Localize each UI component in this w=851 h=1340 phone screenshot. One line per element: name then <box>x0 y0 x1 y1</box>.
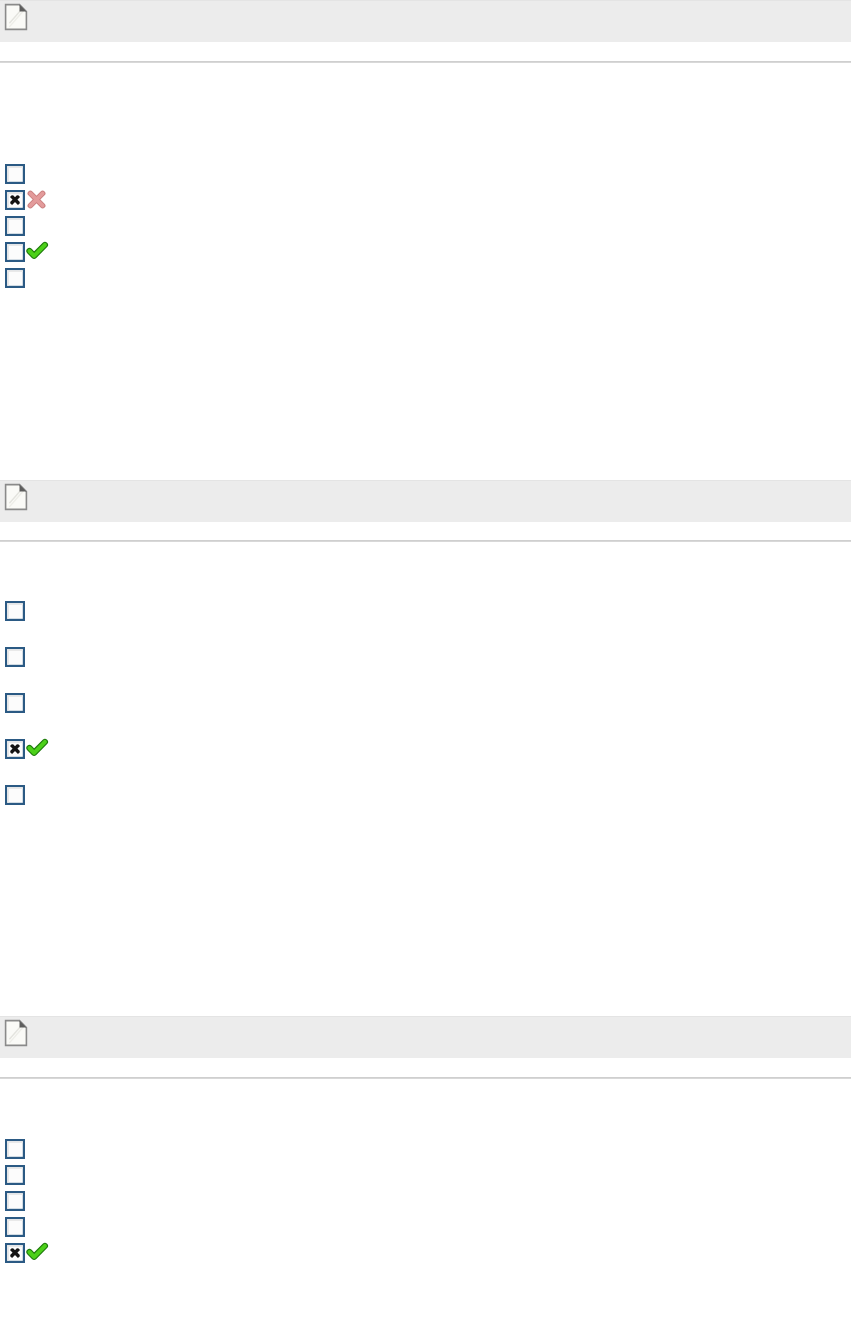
button[interactable]: Answer option <box>0 692 851 738</box>
button[interactable]: Answer option <box>0 1190 851 1216</box>
button[interactable]: Document section <box>0 0 851 42</box>
button[interactable]: Answer option <box>0 1164 851 1190</box>
button[interactable]: Answer option <box>0 646 851 692</box>
button[interactable]: Answer option <box>0 600 851 646</box>
button[interactable]: Answer option <box>0 215 851 241</box>
button[interactable]: Answer option <box>0 163 851 189</box>
button[interactable]: Selected answer, correct <box>0 1242 851 1268</box>
button[interactable]: Answer option <box>0 1138 851 1164</box>
button[interactable]: Selected answer, correct <box>0 738 851 784</box>
button[interactable]: Answer option <box>0 1216 851 1242</box>
button[interactable]: Document section <box>0 1016 851 1058</box>
button[interactable]: Answer option <box>0 267 851 293</box>
button[interactable]: Correct answer <box>0 241 851 267</box>
button[interactable]: Selected answer, incorrect <box>0 189 851 215</box>
button[interactable]: Document section <box>0 480 851 522</box>
button[interactable]: Answer option <box>0 784 851 830</box>
